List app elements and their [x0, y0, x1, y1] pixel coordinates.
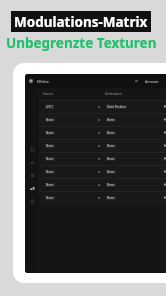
button[interactable]: LFO1: [39, 100, 166, 113]
staticText: None: [107, 118, 115, 122]
staticText: Destination: [105, 92, 122, 96]
staticText: Amount: [145, 79, 159, 84]
staticText: None: [107, 131, 115, 135]
button[interactable]: Favorites: [25, 143, 39, 156]
staticText: None: [107, 170, 115, 174]
staticText: None: [46, 183, 54, 187]
staticText: None: [107, 196, 115, 200]
button[interactable]: Settings: [25, 195, 39, 208]
staticText: Source: [43, 92, 53, 96]
staticText: None: [46, 196, 54, 200]
staticText: None: [46, 144, 54, 148]
button[interactable]: None: [39, 126, 166, 139]
staticText: None: [46, 157, 54, 161]
staticText: Orbit Position: [107, 105, 126, 109]
staticText: None: [107, 183, 115, 187]
button[interactable]: None: [39, 139, 166, 152]
button[interactable]: None: [39, 191, 166, 204]
staticText: Modulations-Matrix: [14, 13, 148, 31]
button[interactable]: None: [39, 178, 166, 191]
staticText: None: [107, 157, 115, 161]
staticText: None: [46, 170, 54, 174]
button[interactable]: None: [39, 152, 166, 165]
button[interactable]: Modulations-Matrix: [11, 11, 151, 32]
button[interactable]: Mixer: [25, 169, 39, 182]
button[interactable]: None: [39, 113, 166, 126]
button[interactable]: None: [39, 165, 166, 178]
staticText: Effekte: [37, 79, 49, 84]
staticText: None: [46, 118, 54, 122]
staticText: None: [46, 131, 54, 135]
button[interactable]: Envelope: [25, 156, 39, 169]
staticText: LFO1: [46, 105, 53, 109]
staticText: Unbegrenzte Texturen: [6, 34, 157, 52]
button[interactable]: Modulation matrix: [25, 182, 39, 195]
staticText: None: [107, 144, 115, 148]
